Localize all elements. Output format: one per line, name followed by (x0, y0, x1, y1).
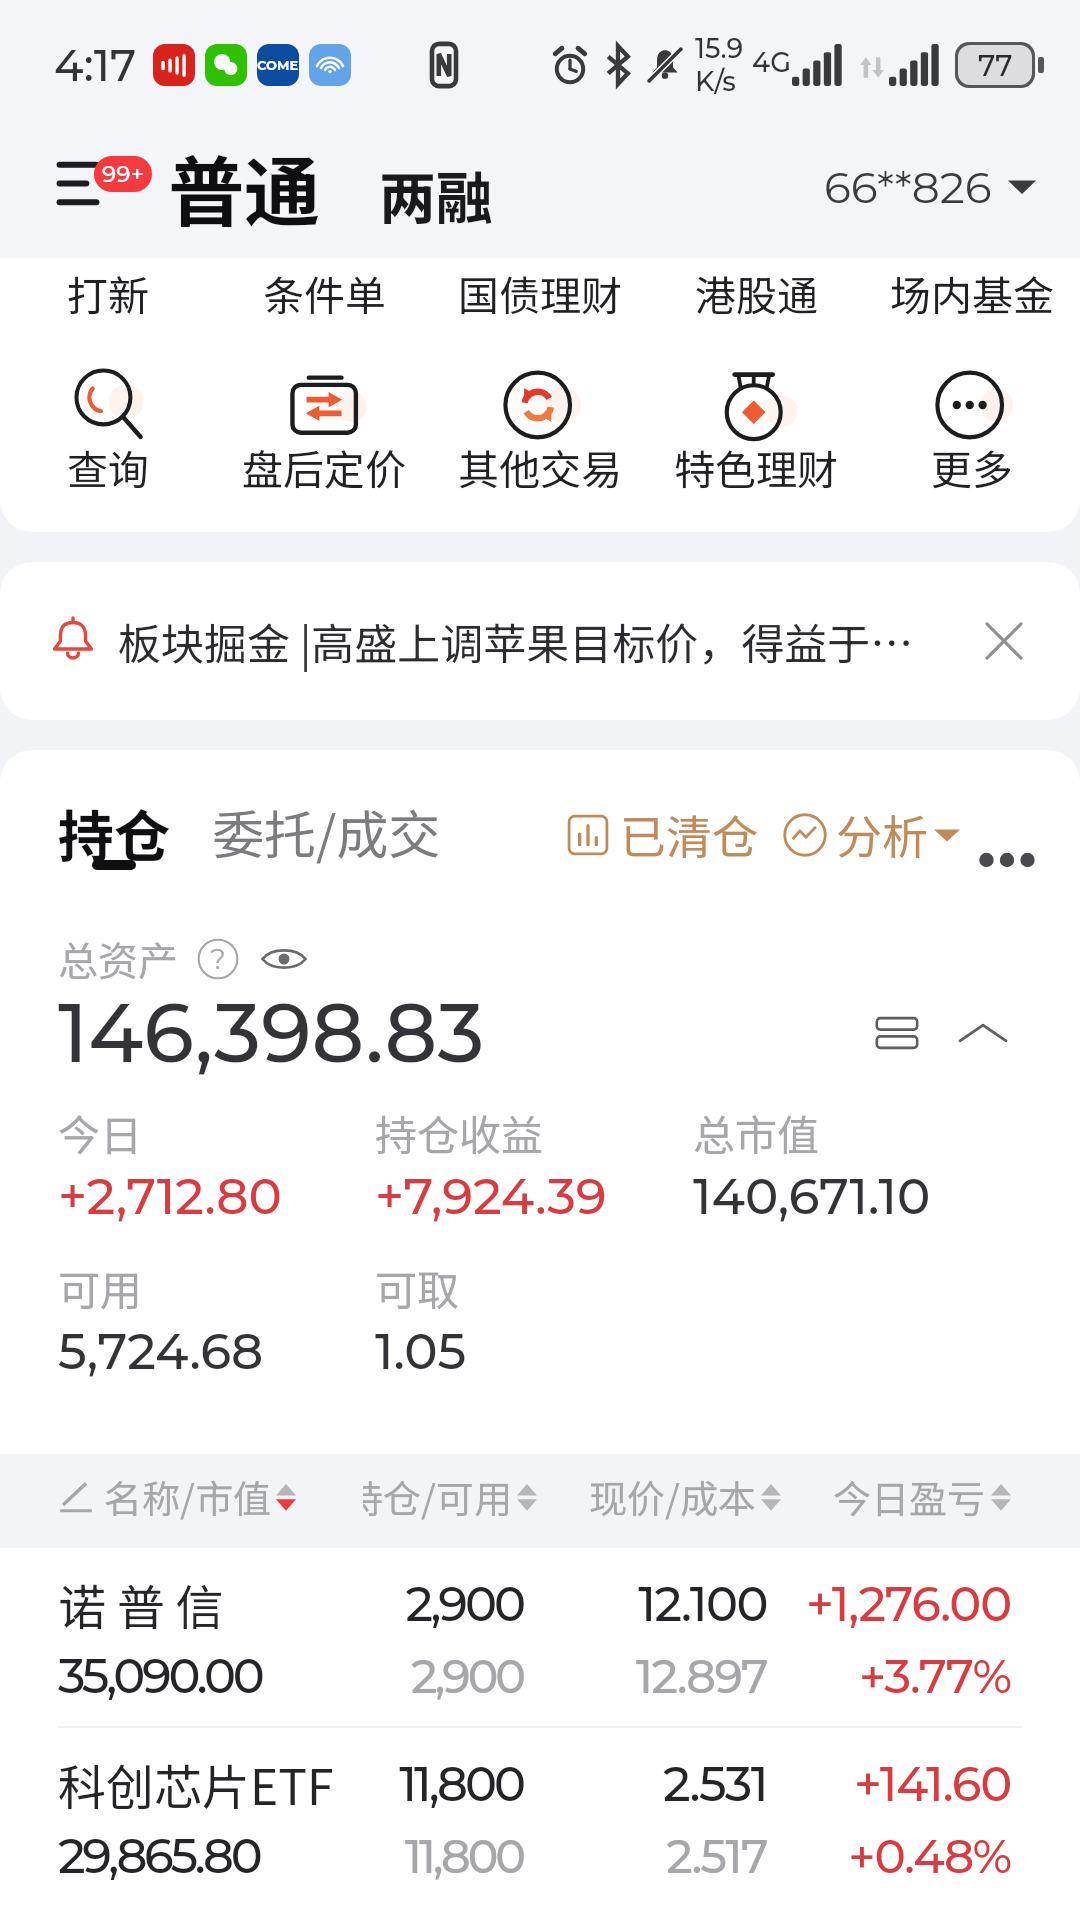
staticText: +7,924.39 (375, 1166, 607, 1227)
button[interactable]: Menu, 99+ notifications (50, 145, 160, 229)
staticText: +3.77% (767, 1648, 1011, 1705)
staticText: 今日 (58, 1102, 143, 1163)
staticText: 特色理财 (674, 437, 838, 496)
button[interactable]: 诺 普 信 (0, 1548, 1080, 1726)
staticText: 2.517 (523, 1828, 767, 1884)
staticText: 35,090.00 (58, 1647, 262, 1706)
button[interactable]: 66**826 (824, 160, 1036, 214)
staticText: 11,800 (279, 1828, 523, 1884)
staticText: 总市值 (693, 1102, 820, 1163)
staticText: 查询 (67, 437, 149, 496)
staticText: 12.897 (523, 1648, 767, 1704)
staticText: 4G (752, 46, 792, 79)
staticText: +1,276.00 (767, 1575, 1011, 1634)
staticText: 委托/成交 (212, 794, 441, 869)
staticText: 持仓 (58, 792, 170, 873)
staticText: 1.05 (375, 1321, 467, 1382)
staticText: +2,712.80 (58, 1166, 282, 1227)
staticText: +141.60 (767, 1755, 1011, 1814)
staticText: 分析 (836, 801, 928, 868)
staticText: COME (257, 57, 299, 73)
button[interactable]: 持仓 (58, 792, 170, 883)
button[interactable]: Switch layout (869, 1005, 925, 1061)
button[interactable]: 场内基金 (864, 258, 1080, 532)
staticText: 15.9 (695, 32, 744, 65)
staticText: 2.531 (523, 1755, 767, 1814)
button[interactable]: Collapse (955, 1005, 1011, 1061)
staticText: 名称/市值 (104, 1469, 271, 1524)
staticText: 打新 (67, 263, 149, 322)
button[interactable]: 今日盈亏 (833, 1469, 1011, 1524)
button[interactable]: 打新 (0, 258, 216, 532)
staticText: 科创芯片ETF (58, 1749, 334, 1819)
button[interactable]: 两融 (379, 146, 493, 229)
button[interactable]: 条件单 (216, 258, 432, 532)
staticText: 今日盈亏 (833, 1469, 986, 1524)
button[interactable]: Toggle amount visibility (260, 935, 308, 983)
staticText: 总资产 (58, 930, 178, 988)
staticText: 场内基金 (890, 263, 1054, 322)
button[interactable]: 委托/成交 (212, 794, 441, 883)
button[interactable]: 已清仓 (566, 801, 758, 883)
staticText: 两融 (379, 153, 493, 236)
staticText: 盘后定价 (242, 437, 406, 496)
staticText: 可取 (375, 1257, 460, 1318)
button[interactable]: 现价/成本 (589, 1469, 781, 1524)
staticText: 可用 (58, 1257, 143, 1318)
staticText: 国债理财 (458, 263, 622, 322)
button[interactable]: 港股通 (648, 258, 864, 532)
staticText: +0.48% (767, 1828, 1011, 1885)
staticText: 持仓/可用 (363, 1469, 512, 1524)
staticText: 2,900 (279, 1575, 523, 1634)
staticText: 77 (978, 48, 1013, 83)
staticText: 港股通 (695, 263, 818, 322)
button[interactable]: 国债理财 (432, 258, 648, 532)
staticText: 29,865.80 (58, 1827, 260, 1886)
staticText: 其他交易 (458, 437, 622, 496)
staticText: 2,900 (279, 1648, 523, 1704)
staticText: 11,800 (279, 1755, 523, 1814)
staticText: 已清仓 (620, 801, 758, 868)
button[interactable]: Close (972, 609, 1036, 673)
button[interactable]: 普通 (168, 132, 320, 242)
button[interactable]: 名称/市值 (104, 1469, 308, 1524)
staticText: 140,671.10 (693, 1166, 931, 1227)
staticText: 板块掘金 |高盛上调苹果目标价，得益于… (118, 610, 962, 672)
button[interactable]: More options (978, 837, 1036, 883)
staticText: K/s (695, 65, 736, 98)
button[interactable]: 持仓/可用 (308, 1469, 537, 1524)
staticText: ? (210, 942, 226, 976)
staticText: 99+ (102, 160, 144, 188)
staticText: 146,398.83 (58, 983, 485, 1083)
staticText: 4:17 (54, 38, 137, 92)
staticText: 诺 普 信 (58, 1569, 224, 1639)
staticText: 66**826 (824, 160, 992, 214)
staticText: 持仓收益 (375, 1102, 544, 1163)
button[interactable]: 分析 (782, 801, 960, 883)
staticText: 5,724.68 (58, 1321, 264, 1382)
staticText: 12.100 (523, 1575, 767, 1634)
staticText: 普通 (168, 132, 320, 242)
staticText: 条件单 (263, 263, 386, 322)
staticText: 更多 (931, 437, 1013, 496)
button[interactable]: Help (196, 937, 240, 981)
button[interactable]: 科创芯片ETF (0, 1728, 1080, 1906)
staticText: 现价/成本 (589, 1469, 756, 1524)
